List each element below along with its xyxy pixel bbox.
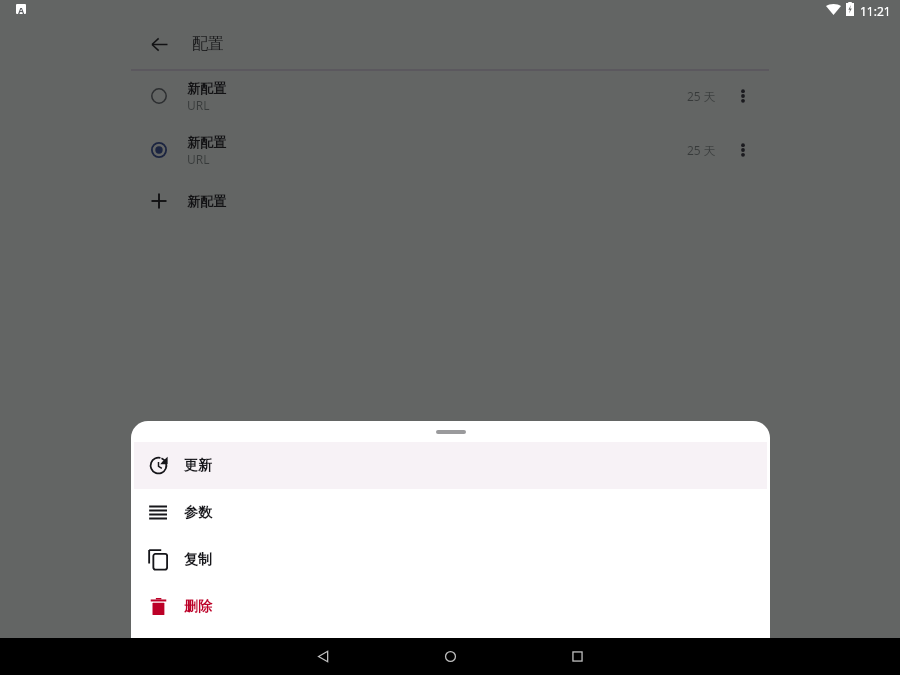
staticText: A xyxy=(18,4,25,14)
staticText: 25 天 xyxy=(687,88,716,104)
staticText: 11:21 xyxy=(860,3,891,19)
staticText: 25 天 xyxy=(687,142,716,158)
staticText: 复制 xyxy=(184,551,212,569)
button[interactable]: 参数 xyxy=(131,489,770,536)
button[interactable]: More options xyxy=(716,72,769,120)
button[interactable]: 新配置 xyxy=(131,123,769,177)
button[interactable]: 复制 xyxy=(131,536,770,583)
staticText: 新配置 xyxy=(187,80,226,96)
button[interactable]: Home xyxy=(387,638,514,675)
staticText: 新配置 xyxy=(187,134,226,150)
button[interactable]: 新配置 xyxy=(131,177,769,225)
button[interactable]: More options xyxy=(716,126,769,174)
button[interactable]: Recents xyxy=(514,638,641,675)
button[interactable]: 新配置 xyxy=(131,69,769,123)
button[interactable]: 更新 xyxy=(131,442,770,489)
button[interactable]: Back xyxy=(139,24,179,64)
staticText: 更新 xyxy=(184,457,212,475)
staticText: URL xyxy=(187,97,210,113)
button[interactable]: Back xyxy=(260,638,387,675)
staticText: 配置 xyxy=(192,34,224,54)
staticText: 删除 xyxy=(184,598,212,616)
button[interactable]: 删除 xyxy=(131,583,770,630)
staticText: URL xyxy=(187,151,210,167)
staticText: 新配置 xyxy=(187,193,226,209)
staticText: 参数 xyxy=(184,504,212,522)
